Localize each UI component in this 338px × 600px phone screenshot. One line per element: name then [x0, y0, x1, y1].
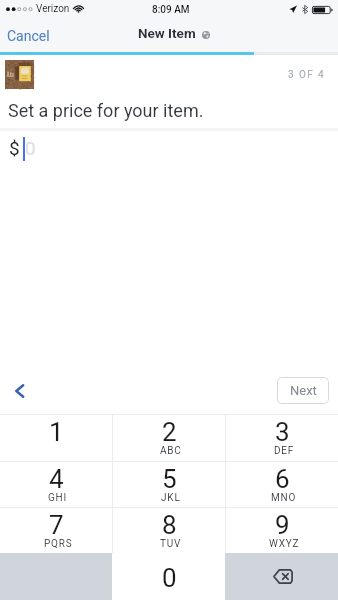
button[interactable]: 3 — [226, 415, 338, 461]
staticText: DEF — [274, 445, 295, 457]
button[interactable]: Cancel — [0, 20, 56, 52]
button[interactable]: 2 — [113, 415, 225, 461]
staticText: 8:09 AM — [152, 4, 190, 16]
staticText: New Item — [138, 25, 196, 41]
staticText: TUV — [160, 538, 182, 550]
button[interactable]: 0 — [112, 553, 225, 600]
staticText: 5 — [162, 464, 177, 494]
staticText: 3 OF 4 — [288, 69, 326, 81]
staticText: 3 — [275, 417, 290, 447]
staticText: 0 — [162, 563, 177, 593]
button[interactable]: 8 — [113, 508, 225, 553]
staticText: Set a price for your item. — [8, 100, 204, 121]
staticText: GHI — [48, 492, 68, 504]
staticText: 2 — [162, 417, 177, 447]
staticText: 7 — [49, 510, 64, 540]
button[interactable]: Delete — [225, 553, 338, 600]
staticText: $ — [9, 137, 20, 159]
staticText: 0 — [25, 137, 36, 159]
button[interactable]: Next — [277, 377, 329, 404]
button[interactable]: 9 — [226, 508, 338, 553]
staticText: Verizon — [36, 3, 70, 15]
button[interactable]: 1 — [0, 415, 112, 461]
button[interactable]: 4 — [0, 462, 112, 507]
staticText: Next — [290, 383, 317, 398]
button[interactable]: 6 — [226, 462, 338, 507]
button[interactable]: 7 — [0, 508, 112, 553]
staticText: MNO — [271, 492, 297, 504]
button[interactable]: 5 — [113, 462, 225, 507]
staticText: 4 — [49, 464, 64, 494]
staticText: PQRS — [44, 538, 73, 550]
staticText: 6 — [275, 464, 290, 494]
staticText: 8 — [162, 510, 177, 540]
staticText: 9 — [275, 510, 290, 540]
button[interactable]: Back — [5, 377, 33, 405]
staticText: Cancel — [7, 28, 50, 44]
staticText: WXYZ — [269, 538, 300, 550]
staticText: ABC — [160, 445, 182, 457]
staticText: 1 — [49, 417, 64, 447]
staticText: JKL — [161, 492, 181, 504]
